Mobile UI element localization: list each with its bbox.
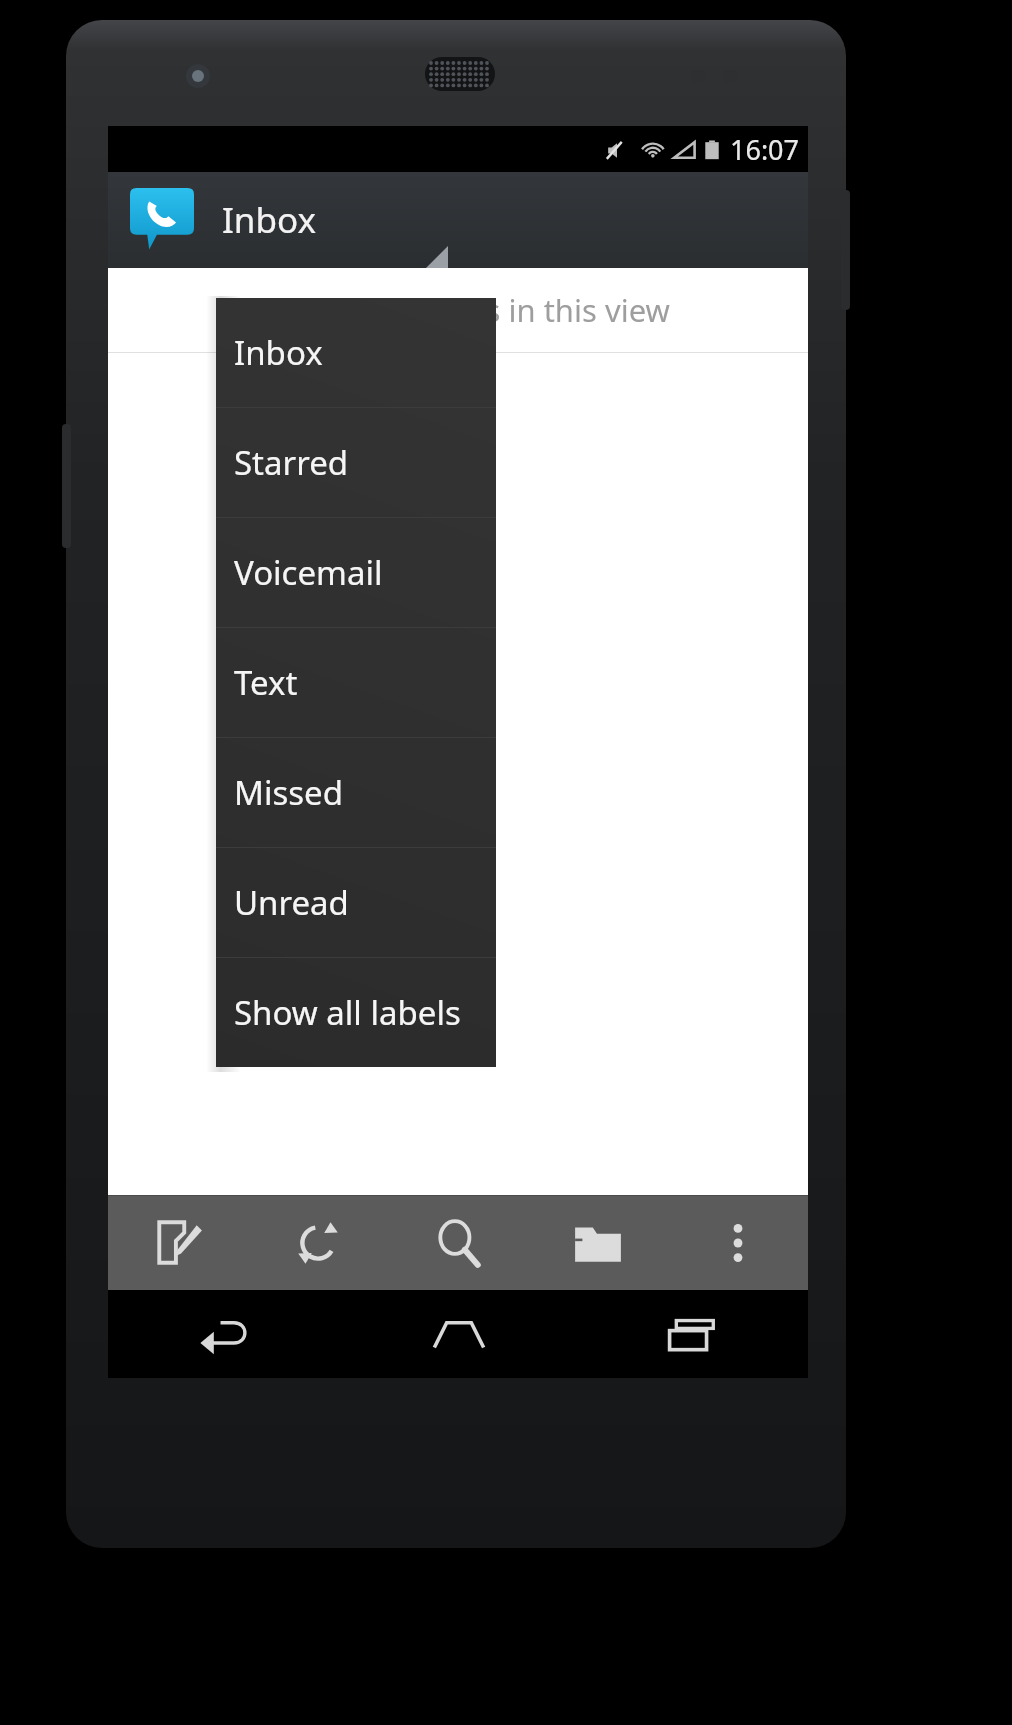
staticText: Show all labels — [234, 990, 461, 1035]
button[interactable]: Text — [216, 628, 496, 737]
staticText: Starred — [234, 440, 349, 485]
staticText: 16:07 — [730, 131, 800, 168]
button[interactable]: Starred — [216, 408, 496, 517]
button[interactable]: Show all labels — [216, 958, 496, 1067]
button[interactable]: Refresh — [248, 1196, 388, 1290]
button[interactable]: Folders — [528, 1196, 668, 1290]
button[interactable]: More options — [668, 1196, 808, 1290]
staticText: Unread — [234, 880, 349, 925]
button[interactable]: Inbox — [216, 298, 496, 407]
button[interactable]: Unread — [216, 848, 496, 957]
button[interactable]: Back — [108, 1290, 342, 1378]
staticText: Text — [234, 660, 298, 705]
button[interactable]: Compose — [108, 1196, 248, 1290]
button[interactable]: Home — [342, 1290, 575, 1378]
button[interactable]: Recent apps — [575, 1290, 808, 1378]
staticText: Voicemail — [234, 550, 383, 595]
staticText: Inbox — [222, 196, 317, 244]
button[interactable]: Voicemail — [216, 518, 496, 627]
staticText: Missed — [234, 770, 343, 815]
button[interactable]: Search — [388, 1196, 528, 1290]
button[interactable]: Missed — [216, 738, 496, 847]
staticText: No conversations in this view — [247, 289, 670, 331]
staticText: Inbox — [234, 330, 323, 375]
